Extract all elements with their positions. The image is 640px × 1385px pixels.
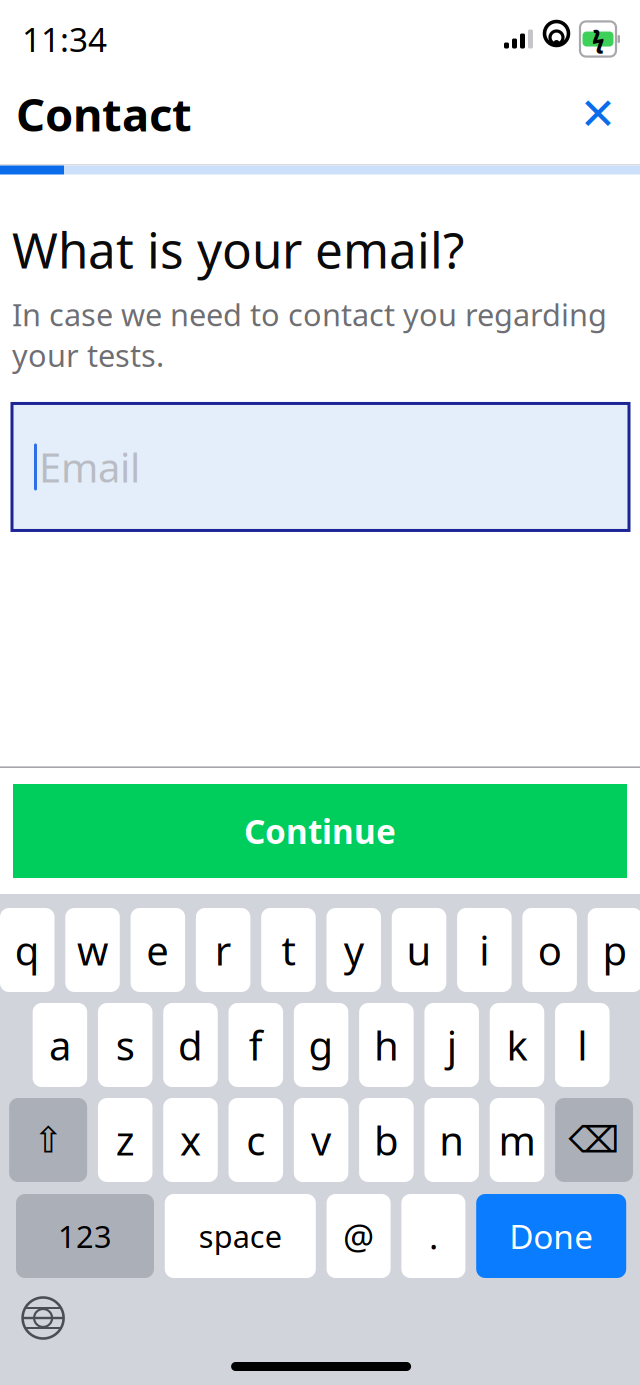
- button[interactable]: space: [165, 1194, 316, 1278]
- staticText: Contact: [16, 84, 192, 144]
- button[interactable]: u: [392, 908, 446, 992]
- button[interactable]: .: [401, 1194, 465, 1278]
- staticText: i: [479, 923, 489, 976]
- staticText: y: [344, 923, 364, 976]
- staticText: g: [309, 1018, 334, 1071]
- staticText: v: [311, 1113, 331, 1166]
- button[interactable]: w: [65, 908, 120, 992]
- button[interactable]: l: [555, 1003, 609, 1087]
- button[interactable]: h: [359, 1003, 414, 1087]
- staticText: u: [407, 923, 432, 976]
- staticText: In case we need to contact you regarding…: [12, 294, 607, 375]
- staticText: l: [577, 1018, 587, 1071]
- staticText: ⌫: [568, 1120, 619, 1160]
- staticText: t: [281, 923, 295, 976]
- button[interactable]: e: [131, 908, 185, 992]
- staticText: 123: [58, 1216, 112, 1256]
- button[interactable]: Continue: [13, 784, 627, 878]
- button[interactable]: Next keyboard: [11, 1286, 75, 1350]
- staticText: x: [180, 1113, 201, 1166]
- button[interactable]: r: [196, 908, 250, 992]
- staticText: q: [15, 923, 40, 976]
- staticText: z: [116, 1113, 135, 1166]
- staticText: c: [246, 1113, 265, 1166]
- button[interactable]: Close: [569, 85, 627, 143]
- staticText: What is your email?: [12, 216, 464, 282]
- staticText: .: [429, 1213, 438, 1259]
- button[interactable]: f: [229, 1003, 283, 1087]
- staticText: r: [215, 923, 232, 976]
- staticText: p: [602, 923, 627, 976]
- button[interactable]: Done: [476, 1194, 626, 1278]
- staticText: ϟ: [592, 24, 604, 54]
- button[interactable]: q: [0, 908, 54, 992]
- staticText: w: [77, 923, 108, 976]
- staticText: f: [249, 1018, 263, 1071]
- button[interactable]: i: [457, 908, 512, 992]
- button[interactable]: Email: [12, 403, 629, 530]
- button[interactable]: Shift: [9, 1098, 87, 1182]
- button[interactable]: p: [588, 908, 640, 992]
- staticText: Continue: [244, 809, 396, 853]
- button[interactable]: v: [294, 1098, 348, 1182]
- button[interactable]: m: [490, 1098, 544, 1182]
- button[interactable]: k: [490, 1003, 544, 1087]
- staticText: ⇧: [33, 1120, 63, 1160]
- staticText: e: [146, 923, 169, 976]
- staticText: k: [506, 1018, 527, 1071]
- button[interactable]: s: [98, 1003, 152, 1087]
- button[interactable]: d: [163, 1003, 218, 1087]
- staticText: n: [439, 1113, 464, 1166]
- button[interactable]: x: [163, 1098, 218, 1182]
- button[interactable]: o: [522, 908, 577, 992]
- staticText: h: [374, 1018, 399, 1071]
- staticText: s: [116, 1018, 135, 1071]
- button[interactable]: b: [359, 1098, 414, 1182]
- staticText: Email: [39, 440, 140, 493]
- button[interactable]: c: [229, 1098, 283, 1182]
- staticText: ✕: [579, 89, 616, 139]
- staticText: m: [498, 1113, 535, 1166]
- staticText: o: [538, 923, 562, 976]
- button[interactable]: g: [294, 1003, 348, 1087]
- button[interactable]: n: [424, 1098, 479, 1182]
- button[interactable]: z: [98, 1098, 152, 1182]
- staticText: Done: [509, 1214, 593, 1258]
- button[interactable]: a: [33, 1003, 87, 1087]
- staticText: space: [199, 1216, 282, 1256]
- staticText: d: [178, 1018, 203, 1071]
- staticText: 11:34: [22, 17, 107, 61]
- button[interactable]: j: [424, 1003, 479, 1087]
- staticText: @: [343, 1213, 374, 1259]
- button[interactable]: t: [261, 908, 316, 992]
- staticText: j: [447, 1018, 457, 1071]
- button[interactable]: y: [326, 908, 381, 992]
- button[interactable]: @: [327, 1194, 391, 1278]
- button[interactable]: Delete: [555, 1098, 633, 1182]
- button[interactable]: 123: [16, 1194, 154, 1278]
- staticText: a: [49, 1018, 71, 1071]
- staticText: b: [374, 1113, 399, 1166]
